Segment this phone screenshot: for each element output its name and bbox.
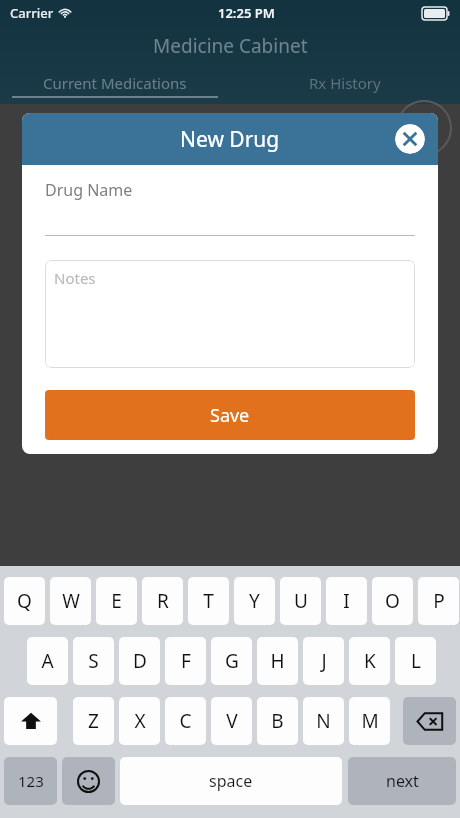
staticText: P — [433, 588, 445, 614]
staticText: 12:25 PM — [218, 4, 275, 22]
staticText: Rx History — [309, 73, 381, 93]
button[interactable]: space — [120, 757, 342, 805]
button[interactable]: Current Medications — [0, 66, 230, 100]
button[interactable]: C — [165, 697, 206, 745]
button[interactable]: L — [395, 637, 436, 685]
button[interactable]: Notes — [45, 260, 415, 368]
staticText: Save — [210, 403, 250, 428]
staticText: space — [209, 770, 253, 792]
button[interactable]: Y — [234, 577, 275, 625]
staticText: B — [271, 708, 284, 734]
button[interactable]: N — [303, 697, 344, 745]
staticText: C — [179, 708, 192, 734]
staticText: Current Medications — [43, 73, 187, 93]
staticText: R — [157, 588, 169, 614]
staticText: Q — [17, 588, 32, 614]
button[interactable]: Shift — [4, 697, 57, 745]
staticText: G — [225, 648, 239, 674]
staticText: M — [361, 708, 379, 734]
button[interactable]: Drug Name — [45, 178, 415, 236]
staticText: F — [181, 648, 191, 674]
button[interactable]: J — [303, 637, 344, 685]
staticText: Z — [88, 708, 99, 734]
button[interactable]: P — [418, 577, 459, 625]
button[interactable]: F — [165, 637, 206, 685]
staticText: Drug Name — [45, 179, 133, 201]
staticText: A — [41, 648, 54, 674]
button[interactable]: E — [96, 577, 137, 625]
button[interactable]: D — [119, 637, 160, 685]
staticText: S — [88, 648, 99, 674]
button[interactable]: T — [188, 577, 229, 625]
staticText: U — [294, 588, 308, 614]
staticText: H — [270, 648, 285, 674]
staticText: J — [321, 648, 327, 674]
staticText: Y — [249, 588, 260, 614]
staticText: T — [203, 588, 214, 614]
button[interactable]: K — [349, 637, 390, 685]
staticText: K — [364, 648, 376, 674]
staticText: Notes — [54, 268, 96, 288]
staticText: 123 — [18, 771, 44, 791]
button[interactable]: Emoji — [62, 757, 115, 805]
button[interactable]: B — [257, 697, 298, 745]
button[interactable]: Q — [4, 577, 45, 625]
staticText: E — [111, 588, 122, 614]
button[interactable]: V — [211, 697, 252, 745]
button[interactable]: G — [211, 637, 252, 685]
button[interactable]: Save — [45, 390, 415, 440]
staticText: X — [134, 708, 146, 734]
button[interactable]: I — [326, 577, 367, 625]
staticText: New Drug — [180, 125, 280, 154]
button[interactable]: M — [349, 697, 390, 745]
staticText: Carrier — [10, 4, 54, 22]
staticText: V — [226, 708, 238, 734]
staticText: N — [316, 708, 331, 734]
button[interactable]: A — [27, 637, 68, 685]
button[interactable]: S — [73, 637, 114, 685]
button[interactable]: Close — [395, 124, 425, 154]
button[interactable]: R — [142, 577, 183, 625]
staticText: next — [386, 770, 419, 792]
staticText: W — [62, 588, 80, 614]
staticText: D — [133, 648, 147, 674]
button[interactable]: O — [372, 577, 413, 625]
staticText: Medicine Cabinet — [153, 33, 308, 59]
button[interactable]: Rx History — [230, 66, 460, 100]
button[interactable]: next — [348, 757, 456, 805]
button[interactable]: Backspace — [403, 697, 456, 745]
button[interactable]: H — [257, 637, 298, 685]
staticText: L — [411, 648, 421, 674]
button[interactable]: W — [50, 577, 91, 625]
button[interactable]: 123 — [4, 757, 57, 805]
button[interactable]: Z — [73, 697, 114, 745]
staticText: O — [385, 588, 400, 614]
staticText: I — [343, 588, 350, 614]
button[interactable]: U — [280, 577, 321, 625]
button[interactable]: X — [119, 697, 160, 745]
